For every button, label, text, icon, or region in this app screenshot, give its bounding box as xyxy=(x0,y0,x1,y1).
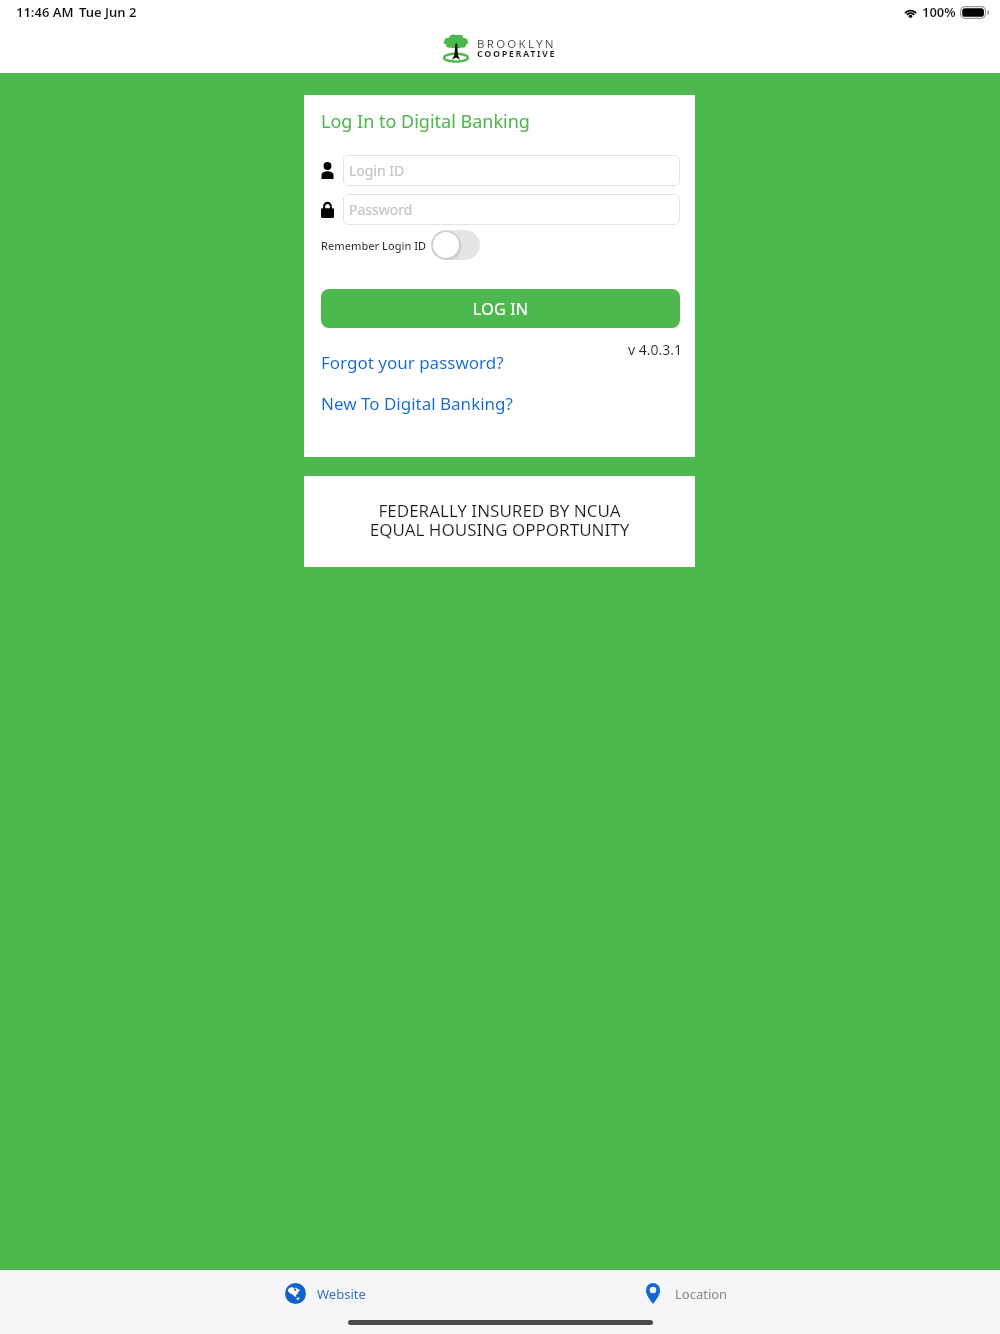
staticText: Tue Jun 2 xyxy=(79,3,137,21)
staticText: Website xyxy=(317,1285,366,1303)
button[interactable]: New To Digital Banking? xyxy=(321,392,680,415)
staticText: LOG IN xyxy=(473,298,529,320)
staticText: Remember Login ID xyxy=(321,238,427,253)
staticText: BROOKLYN xyxy=(477,36,556,52)
other: Website xyxy=(285,1283,306,1304)
staticText: Location xyxy=(675,1285,728,1303)
staticText: Log In to Digital Banking xyxy=(321,109,530,134)
button[interactable]: LOG IN xyxy=(321,289,680,328)
staticText: Password xyxy=(349,200,413,219)
staticText: v 4.0.3.1 xyxy=(628,340,683,359)
staticText: COOPERATIVE xyxy=(477,47,557,59)
button[interactable]: Password xyxy=(343,194,680,225)
staticText: Forgot your password? xyxy=(321,351,504,374)
other: Location xyxy=(646,1283,660,1304)
button[interactable]: Location xyxy=(572,1270,802,1316)
staticText: FEDERALLY INSURED BY NCUA EQUAL HOUSING … xyxy=(304,499,695,541)
button[interactable]: Forgot your password? xyxy=(321,351,680,374)
staticText: 100% xyxy=(922,3,956,21)
staticText: New To Digital Banking? xyxy=(321,392,513,415)
button[interactable]: Login ID xyxy=(343,155,680,186)
button[interactable]: Remember Login ID toggle xyxy=(431,230,480,260)
button[interactable]: Website xyxy=(210,1270,440,1316)
staticText: Login ID xyxy=(349,161,405,180)
staticText: 11:46 AM xyxy=(16,3,74,21)
